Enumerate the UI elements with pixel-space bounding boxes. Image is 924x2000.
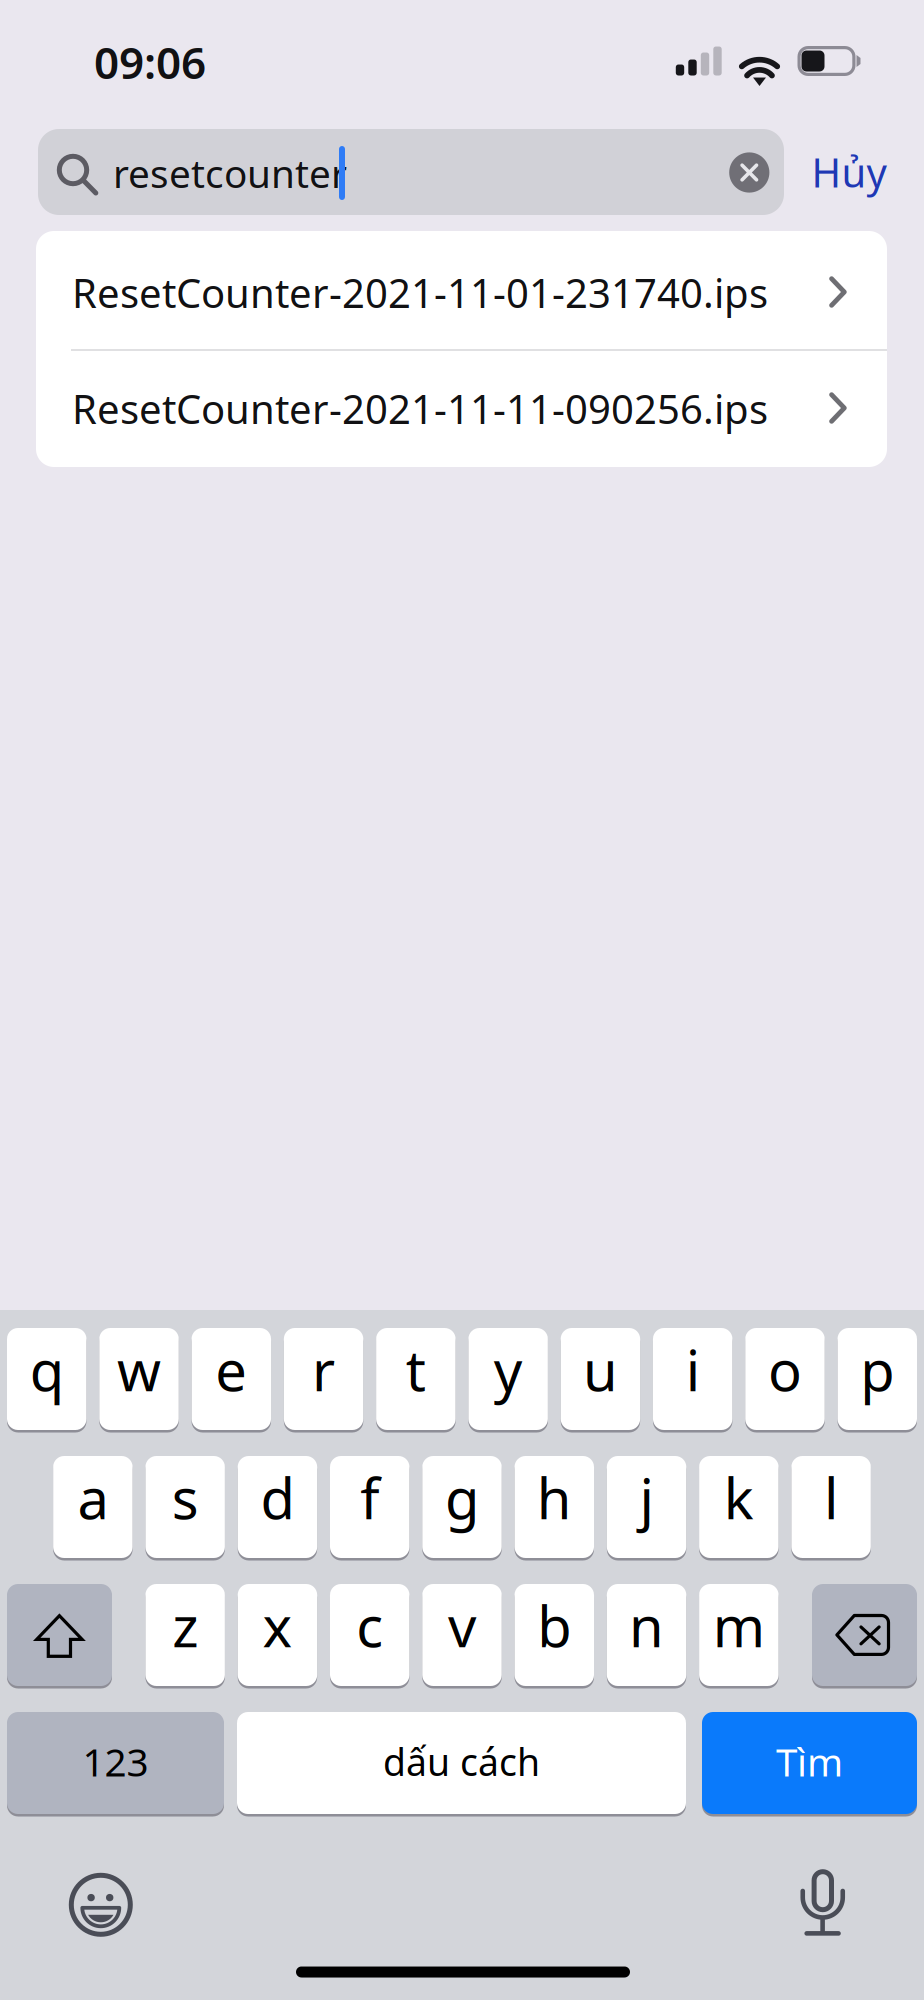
- button[interactable]: dấu cách: [237, 1712, 686, 1819]
- staticText: d: [260, 1460, 294, 1535]
- button[interactable]: f: [330, 1456, 409, 1563]
- button[interactable]: p: [837, 1328, 917, 1435]
- staticText: o: [768, 1332, 802, 1407]
- button[interactable]: y: [468, 1328, 548, 1435]
- button[interactable]: z: [145, 1584, 225, 1691]
- button[interactable]: o: [745, 1328, 825, 1435]
- button[interactable]: n: [607, 1584, 686, 1691]
- staticText: 09:06: [94, 33, 206, 91]
- button[interactable]: m: [699, 1584, 779, 1691]
- staticText: f: [360, 1460, 379, 1535]
- button[interactable]: Dictation: [768, 1845, 878, 1955]
- staticText: i: [686, 1332, 700, 1407]
- button[interactable]: ResetCounter-2021-11-11-090256.ips: [36, 349, 887, 465]
- button[interactable]: d: [238, 1456, 317, 1563]
- button[interactable]: q: [7, 1328, 86, 1435]
- button[interactable]: Hủy: [789, 129, 909, 215]
- button[interactable]: h: [514, 1456, 594, 1563]
- staticText: q: [30, 1332, 64, 1407]
- button[interactable]: t: [376, 1328, 456, 1435]
- staticText: ResetCounter-2021-11-01-231740.ips: [72, 266, 768, 319]
- button[interactable]: ResetCounter-2021-11-01-231740.ips: [36, 233, 887, 349]
- staticText: ResetCounter-2021-11-11-090256.ips: [72, 382, 768, 435]
- staticText: a: [77, 1460, 108, 1535]
- staticText: w: [117, 1332, 161, 1407]
- staticText: l: [824, 1460, 838, 1535]
- button[interactable]: u: [561, 1328, 640, 1435]
- button[interactable]: Shift: [7, 1584, 112, 1691]
- button[interactable]: Clear text: [719, 142, 779, 202]
- staticText: v: [448, 1588, 476, 1663]
- staticText: b: [537, 1588, 571, 1663]
- button[interactable]: e: [192, 1328, 271, 1435]
- button[interactable]: Tìm: [702, 1712, 917, 1819]
- staticText: p: [860, 1332, 894, 1407]
- staticText: dấu cách: [383, 1737, 540, 1786]
- staticText: k: [724, 1460, 754, 1535]
- button[interactable]: s: [145, 1456, 225, 1563]
- staticText: j: [640, 1460, 654, 1535]
- staticText: Hủy: [811, 145, 886, 198]
- button[interactable]: v: [422, 1584, 502, 1691]
- staticText: Tìm: [776, 1736, 843, 1787]
- staticText: x: [262, 1588, 292, 1663]
- button[interactable]: c: [330, 1584, 409, 1691]
- button[interactable]: Delete: [812, 1584, 917, 1691]
- staticText: s: [172, 1460, 199, 1535]
- staticText: resetcounter: [113, 147, 347, 199]
- staticText: e: [215, 1332, 247, 1407]
- button[interactable]: w: [99, 1328, 179, 1435]
- staticText: z: [172, 1588, 198, 1663]
- button[interactable]: i: [653, 1328, 732, 1435]
- button[interactable]: j: [607, 1456, 686, 1563]
- staticText: u: [583, 1332, 618, 1407]
- button[interactable]: b: [514, 1584, 594, 1691]
- staticText: m: [713, 1588, 765, 1663]
- button[interactable]: x: [238, 1584, 317, 1691]
- button[interactable]: r: [284, 1328, 363, 1435]
- button[interactable]: k: [699, 1456, 779, 1563]
- button[interactable]: Emoji: [55, 1859, 147, 1951]
- staticText: t: [406, 1332, 426, 1407]
- staticText: h: [537, 1460, 572, 1535]
- staticText: c: [356, 1588, 383, 1663]
- button[interactable]: g: [422, 1456, 502, 1563]
- staticText: n: [629, 1588, 664, 1663]
- button[interactable]: a: [53, 1456, 133, 1563]
- button[interactable]: l: [791, 1456, 871, 1563]
- staticText: r: [312, 1332, 335, 1407]
- staticText: y: [494, 1332, 523, 1407]
- button[interactable]: 123: [7, 1712, 224, 1819]
- staticText: g: [445, 1460, 479, 1535]
- staticText: 123: [82, 1736, 148, 1787]
